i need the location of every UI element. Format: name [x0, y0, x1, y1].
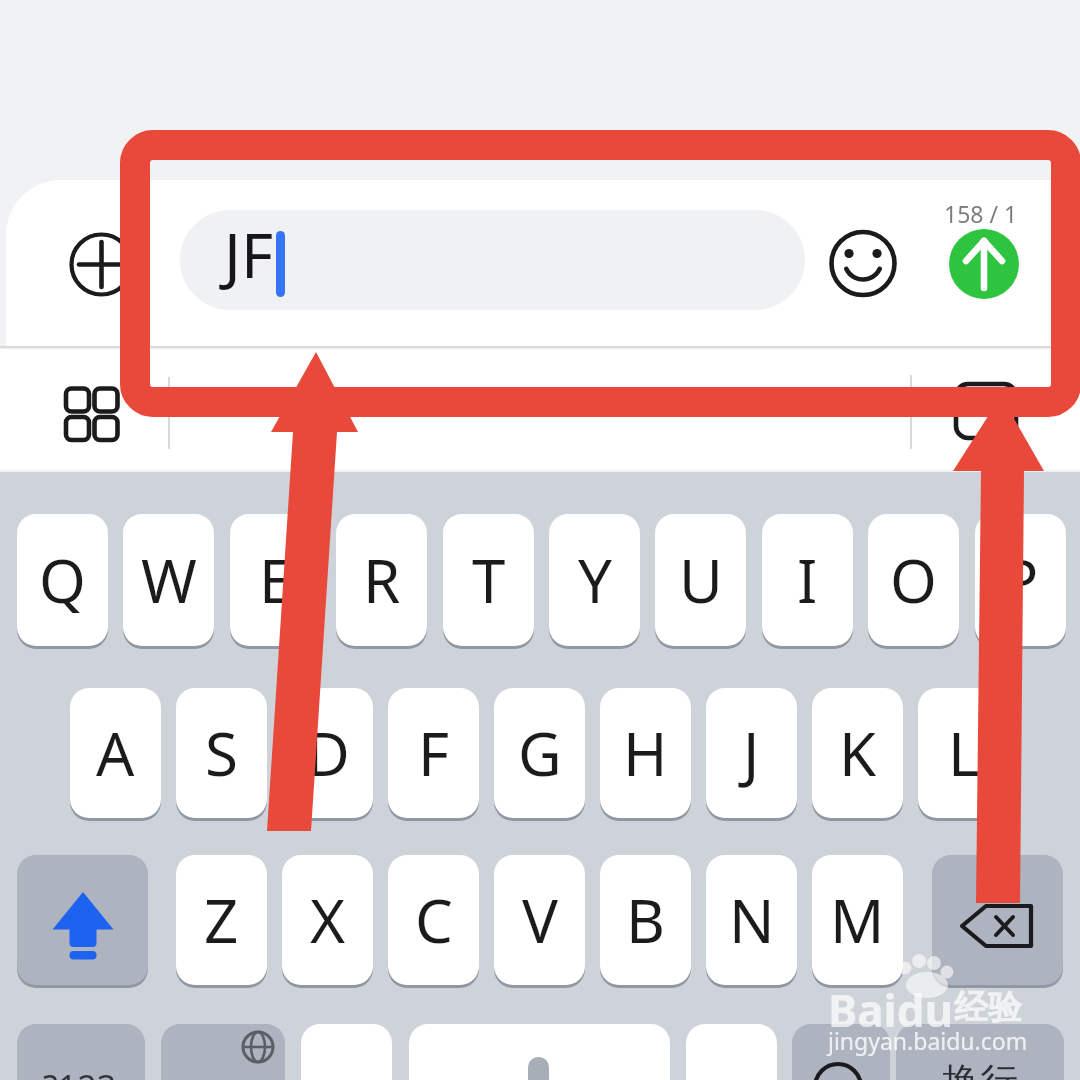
button[interactable]: B [600, 855, 691, 985]
staticText: G [518, 712, 562, 794]
staticText: Q [39, 539, 86, 621]
button[interactable]: K [812, 688, 903, 818]
staticText: T [472, 539, 506, 621]
staticText: K [839, 712, 877, 794]
staticText: W [141, 539, 197, 621]
staticText: U [679, 539, 723, 621]
button[interactable]: T [443, 514, 534, 646]
staticText: C [415, 879, 453, 961]
button[interactable]: P [975, 514, 1066, 646]
button[interactable] [17, 1024, 145, 1080]
button[interactable]: C [388, 855, 479, 985]
staticText: V [522, 879, 558, 961]
staticText: Y [578, 539, 612, 621]
staticText: jingyan.baidu.com [828, 1025, 1028, 1056]
button[interactable] [686, 1024, 777, 1080]
staticText: X [310, 879, 346, 961]
button[interactable] [17, 855, 148, 985]
button[interactable]: J [706, 688, 797, 818]
button[interactable] [161, 1024, 285, 1080]
button[interactable]: U [655, 514, 746, 646]
staticText: E [259, 539, 293, 621]
staticText: P [1002, 539, 1039, 621]
button[interactable]: D [282, 688, 373, 818]
button[interactable]: M [812, 855, 903, 985]
button[interactable] [896, 1024, 1064, 1080]
button[interactable]: Y [549, 514, 640, 646]
staticText: M [830, 879, 885, 961]
staticText: J [743, 712, 760, 794]
button[interactable] [71, 234, 132, 295]
staticText: L [948, 712, 980, 794]
staticText: 换行 [942, 1058, 1018, 1080]
button[interactable] [180, 210, 805, 310]
button[interactable]: V [494, 855, 585, 985]
button[interactable]: Q [17, 514, 108, 646]
staticText: N [729, 879, 775, 961]
staticText: Z [204, 879, 239, 961]
button[interactable]: I [762, 514, 853, 646]
staticText: ?123 [43, 1064, 117, 1080]
button[interactable] [949, 229, 1019, 299]
staticText: O [890, 539, 937, 621]
button[interactable] [946, 378, 1026, 444]
button[interactable] [831, 231, 895, 295]
button[interactable]: Z [176, 855, 267, 985]
button[interactable]: W [123, 514, 214, 646]
button[interactable] [301, 1024, 392, 1080]
staticText: R [363, 539, 401, 621]
staticText: F [418, 712, 450, 794]
staticText: 158 / 1 [944, 198, 1018, 229]
button[interactable]: F [388, 688, 479, 818]
staticText: 经验 [954, 986, 1022, 1029]
button[interactable]: R [336, 514, 427, 646]
button[interactable] [409, 1024, 670, 1080]
button[interactable]: N [706, 855, 797, 985]
button[interactable] [932, 855, 1063, 985]
button[interactable]: S [176, 688, 267, 818]
staticText: S [205, 712, 238, 794]
button[interactable]: X [282, 855, 373, 985]
staticText: I [797, 539, 818, 621]
staticText: Baidu [828, 980, 954, 1040]
button[interactable] [792, 1024, 890, 1080]
button[interactable] [56, 378, 128, 450]
staticText: A [96, 712, 135, 794]
button[interactable]: O [868, 514, 959, 646]
staticText: JF [224, 212, 274, 296]
staticText: H [623, 712, 668, 794]
button[interactable]: H [600, 688, 691, 818]
button[interactable]: L [918, 688, 1009, 818]
button[interactable]: E [230, 514, 321, 646]
button[interactable]: G [494, 688, 585, 818]
staticText: D [306, 712, 350, 794]
staticText: B [626, 879, 665, 961]
button[interactable]: A [70, 688, 161, 818]
